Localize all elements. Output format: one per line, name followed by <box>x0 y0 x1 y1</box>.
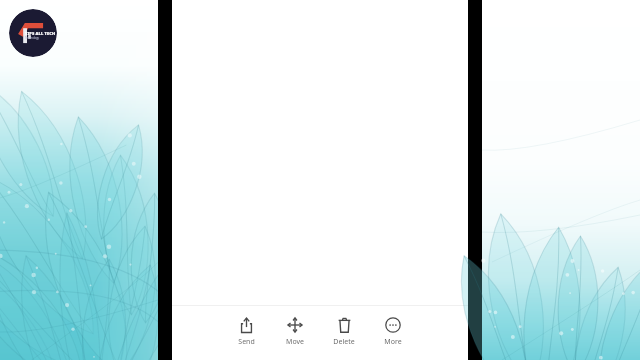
button[interactable]: Tips All Tech logo <box>9 9 57 57</box>
button[interactable]: More <box>371 316 415 348</box>
button[interactable]: Delete <box>322 316 366 348</box>
staticText: Send <box>238 337 255 347</box>
staticText: Move <box>286 337 304 347</box>
staticText: Delete <box>333 337 355 347</box>
button[interactable]: Send <box>224 316 268 348</box>
staticText: Technology <box>25 36 39 40</box>
button[interactable]: Move <box>273 316 317 348</box>
staticText: More <box>384 337 402 347</box>
staticText: TIPS ALL TECH <box>25 31 56 36</box>
